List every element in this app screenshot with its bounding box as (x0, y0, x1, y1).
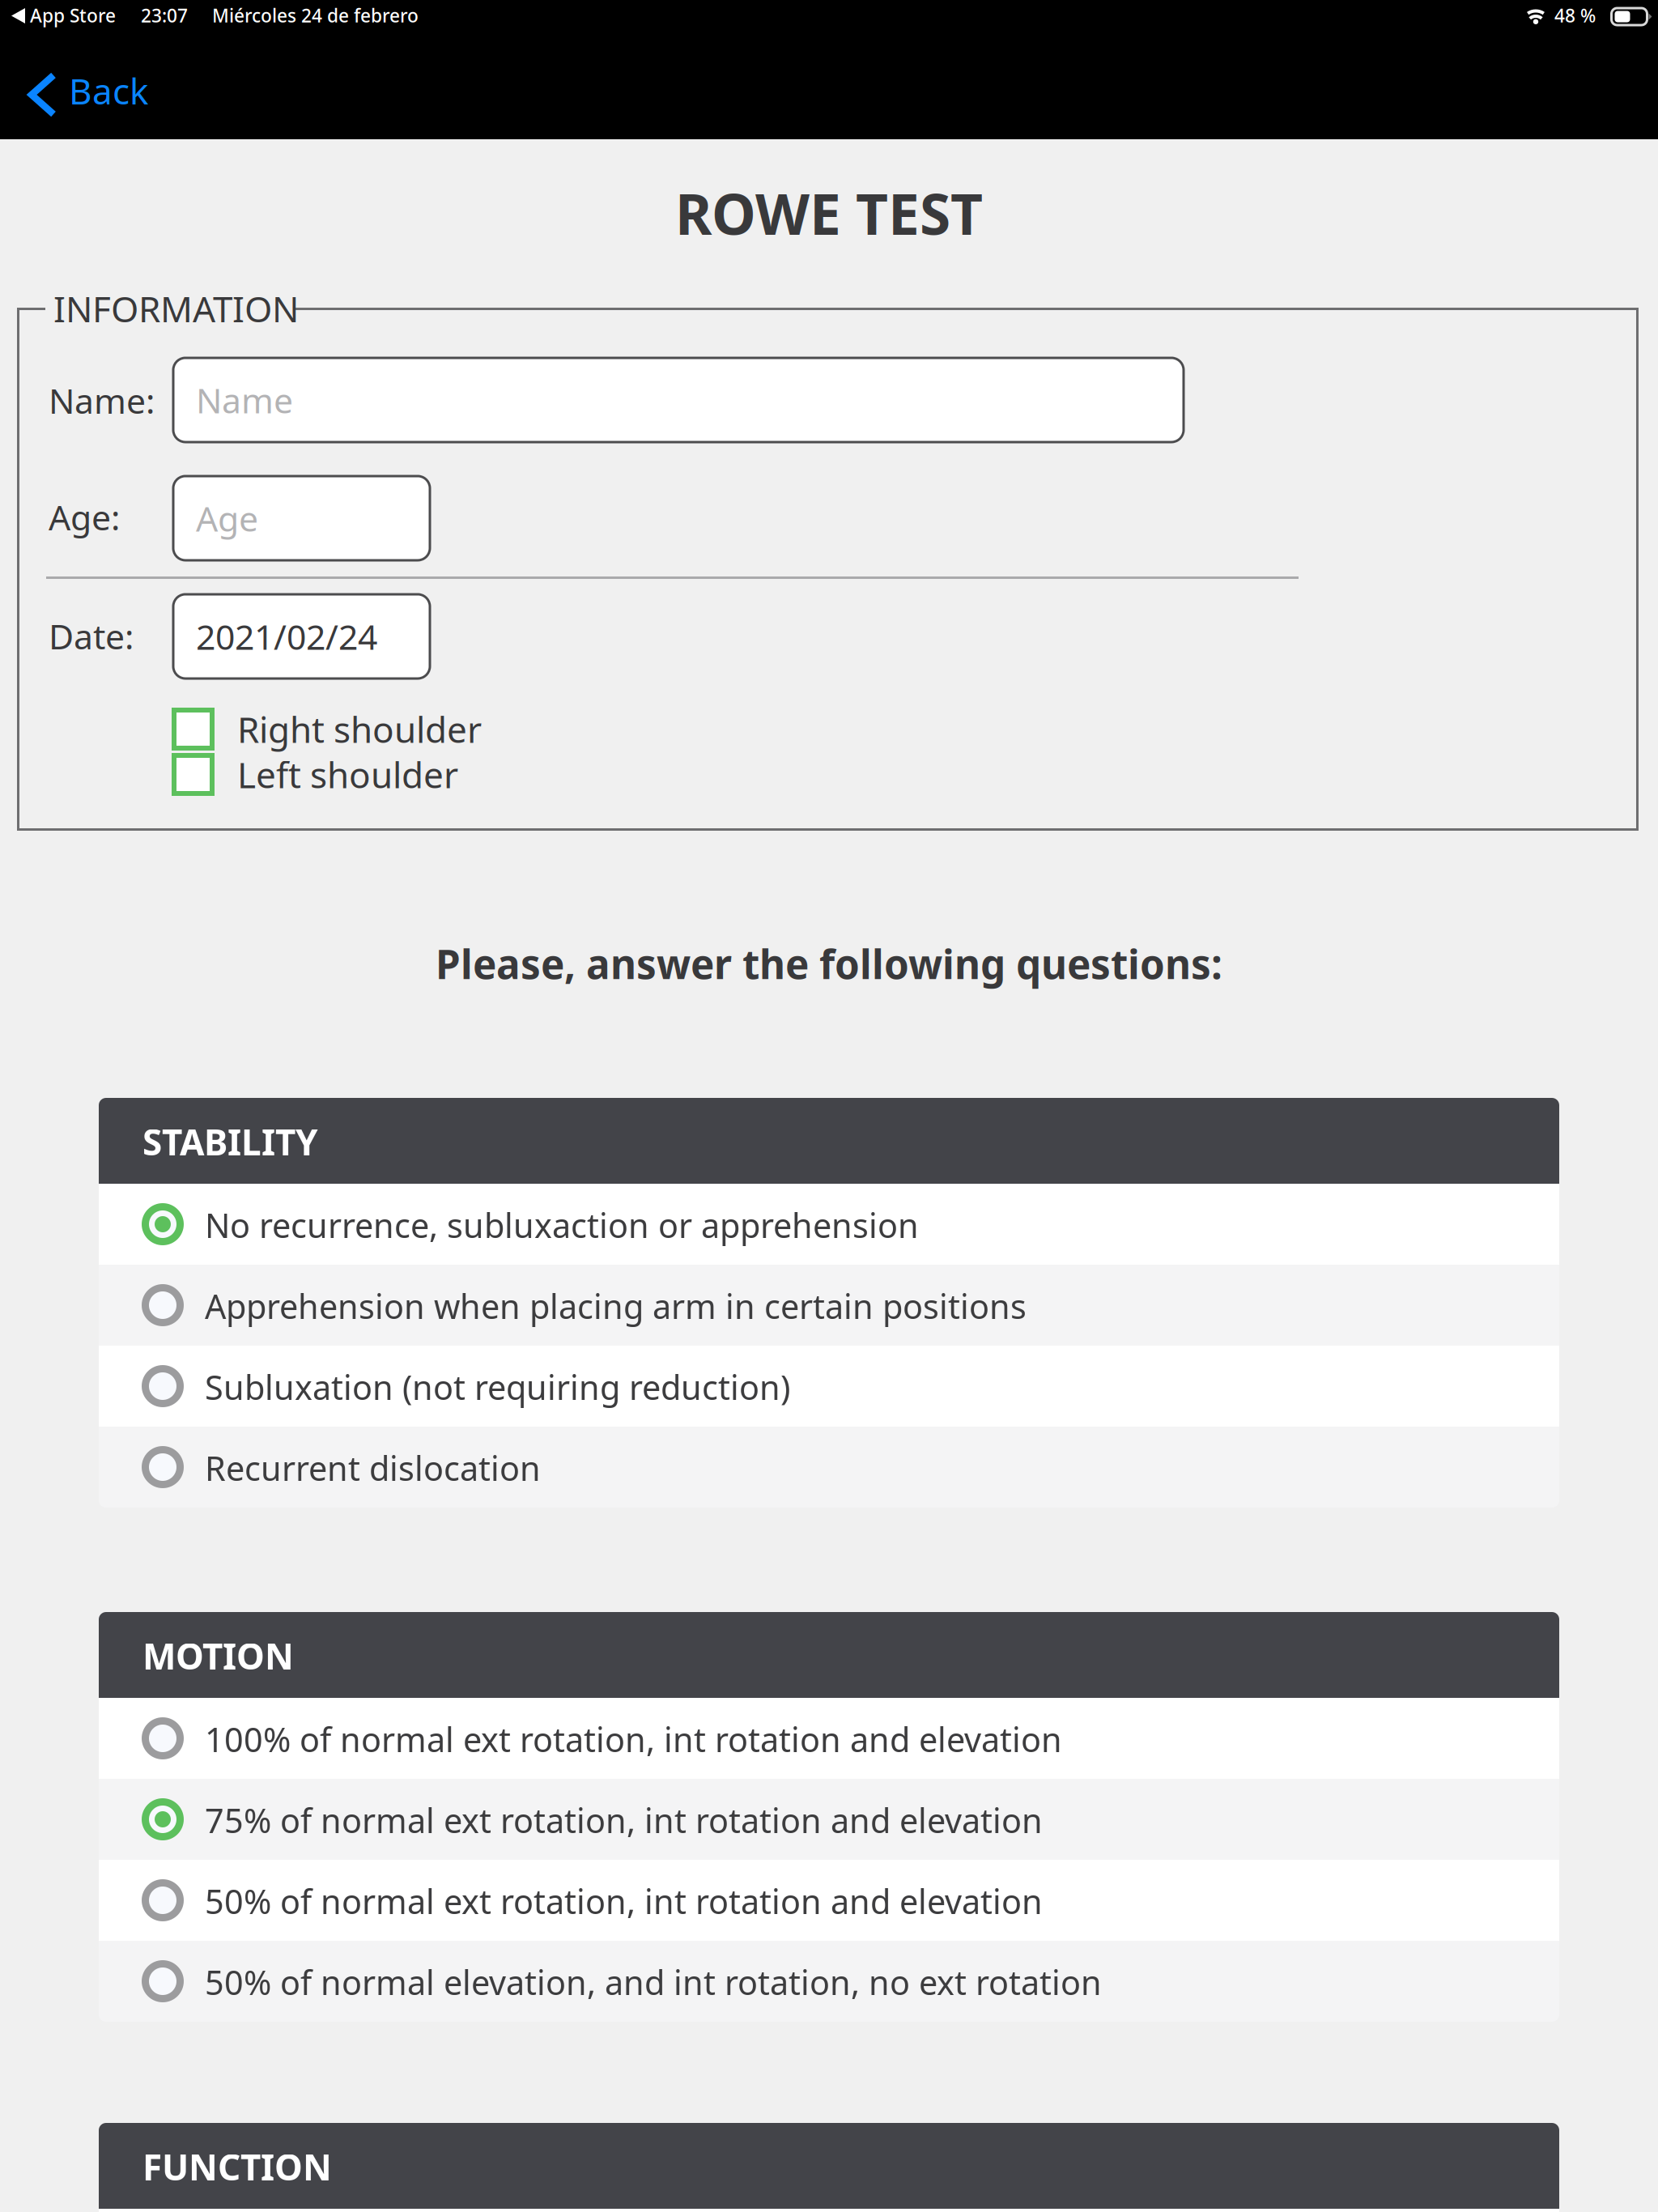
staticText: Apprehension when placing arm in certain… (205, 1284, 1027, 1328)
button[interactable]: Back (0, 44, 183, 139)
staticText: 50% of normal elevation, and int rotatio… (205, 1960, 1102, 2004)
staticText: STABILITY (142, 1118, 318, 1165)
button[interactable]: Right shoulder (172, 708, 625, 751)
button[interactable]: Left shoulder (172, 753, 625, 796)
staticText: Back (69, 67, 148, 114)
staticText: 2021/02/24 (196, 613, 377, 659)
button[interactable]: Subluxation (not requiring reduction) (99, 1346, 1559, 1427)
staticText: No recurrence, subluxaction or apprehens… (205, 1203, 919, 1247)
button[interactable]: Apprehension when placing arm in certain… (99, 1265, 1559, 1346)
staticText: Subluxation (not requiring reduction) (205, 1365, 790, 1409)
button[interactable]: 100% of normal ext rotation, int rotatio… (99, 1698, 1559, 1779)
button[interactable]: 50% of normal elevation, and int rotatio… (99, 1941, 1559, 2022)
staticText: 100% of normal ext rotation, int rotatio… (205, 1717, 1062, 1761)
button[interactable]: 75% of normal ext rotation, int rotation… (99, 1779, 1559, 1860)
staticText: MOTION (142, 1632, 294, 1679)
staticText: Name (196, 377, 293, 423)
staticText: Please, answer the following questions: (436, 937, 1222, 990)
button[interactable]: 50% of normal ext rotation, int rotation… (99, 1860, 1559, 1941)
staticText: 23:07 (141, 3, 188, 28)
staticText: 50% of normal ext rotation, int rotation… (205, 1879, 1043, 1923)
staticText: Age: (49, 494, 120, 540)
button[interactable]: Recurrent dislocation (99, 1427, 1559, 1508)
staticText: Miércoles 24 de febrero (212, 3, 419, 28)
button[interactable]: Name (173, 358, 1184, 442)
staticText: Recurrent dislocation (205, 1446, 541, 1490)
button[interactable]: Date (173, 594, 430, 678)
staticText: App Store (30, 3, 116, 28)
staticText: Date: (49, 613, 134, 659)
staticText: ROWE TEST (675, 176, 983, 250)
staticText: Right shoulder (237, 705, 482, 753)
staticText: 75% of normal ext rotation, int rotation… (205, 1798, 1043, 1842)
button[interactable]: App Store (0, 0, 117, 44)
staticText: FUNCTION (142, 2143, 332, 2190)
staticText: Name: (49, 377, 155, 423)
staticText: Age (196, 495, 258, 541)
button[interactable]: No recurrence, subluxaction or apprehens… (99, 1184, 1559, 1265)
button[interactable]: Age (173, 476, 430, 560)
staticText: 48 % (1554, 3, 1596, 28)
staticText: Left shoulder (237, 751, 458, 798)
staticText: INFORMATION (53, 285, 299, 332)
